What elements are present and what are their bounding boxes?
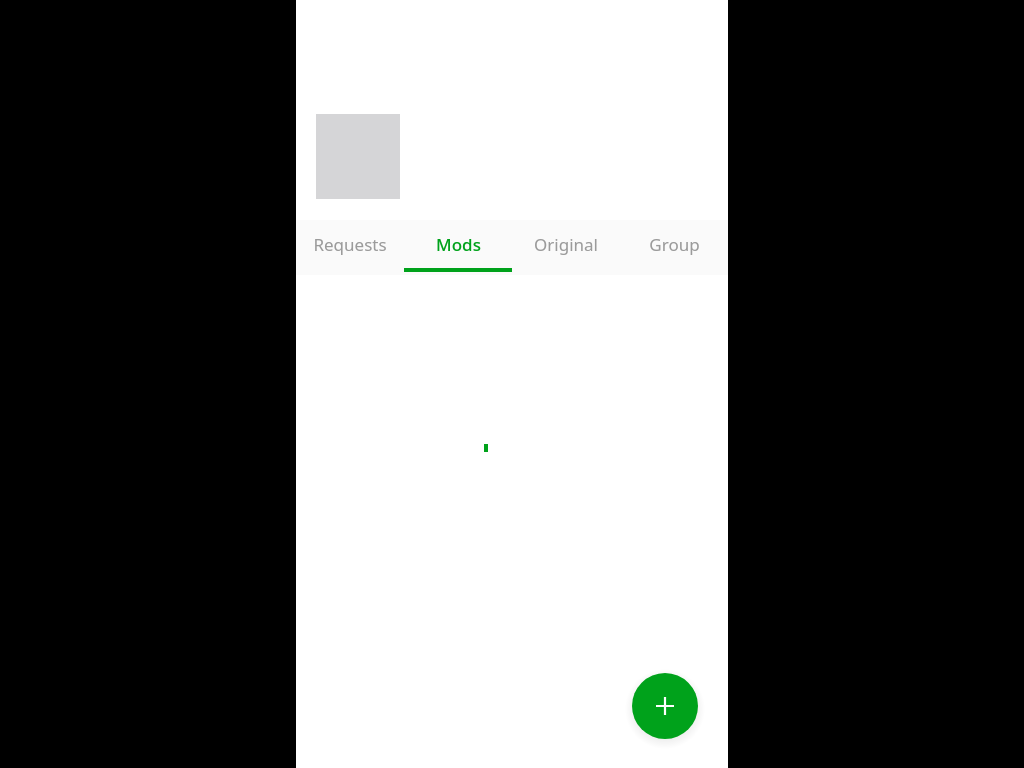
button[interactable]: Mods [404,220,512,275]
staticText: Original [534,233,598,256]
staticText: Mods [436,233,481,256]
button[interactable]: Add [632,673,698,739]
button[interactable]: Requests [296,220,404,275]
staticText: Group [649,233,700,256]
button[interactable]: Original [512,220,620,275]
staticText: Requests [313,233,387,256]
button[interactable]: Group [620,220,728,275]
